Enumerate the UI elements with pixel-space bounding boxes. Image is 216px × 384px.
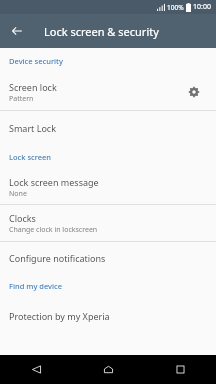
button[interactable]: Protection by my Xperia bbox=[0, 299, 216, 332]
staticText: Lock screen & security bbox=[44, 24, 159, 39]
staticText: Smart Lock bbox=[9, 122, 56, 134]
staticText: Clocks bbox=[9, 212, 36, 224]
staticText: Protection by my Xperia bbox=[9, 310, 110, 322]
staticText: Device security bbox=[9, 56, 63, 66]
staticText: 100% bbox=[167, 3, 184, 12]
staticText: Lock screen bbox=[9, 152, 52, 162]
staticText: 10:00 bbox=[193, 2, 211, 12]
staticText: Screen lock bbox=[9, 81, 57, 93]
button[interactable]: Recent apps bbox=[144, 355, 216, 384]
button[interactable]: Screen lock settings bbox=[180, 78, 208, 106]
button[interactable]: Configure notifications bbox=[0, 242, 216, 273]
button[interactable]: Lock screen message bbox=[0, 170, 216, 204]
button[interactable]: Back bbox=[0, 355, 72, 384]
staticText: Find my device bbox=[9, 281, 63, 291]
staticText: Configure notifications bbox=[9, 252, 106, 264]
staticText: Change clock in lockscreen bbox=[9, 225, 98, 235]
button[interactable]: Home bbox=[72, 355, 144, 384]
button[interactable]: Back bbox=[5, 19, 29, 43]
button[interactable]: Smart Lock bbox=[0, 111, 216, 144]
staticText: None bbox=[9, 189, 27, 199]
staticText: Pattern bbox=[9, 94, 34, 104]
button[interactable]: Screen lock bbox=[0, 74, 216, 110]
staticText: Lock screen message bbox=[9, 176, 99, 188]
button[interactable]: Clocks bbox=[0, 205, 216, 241]
